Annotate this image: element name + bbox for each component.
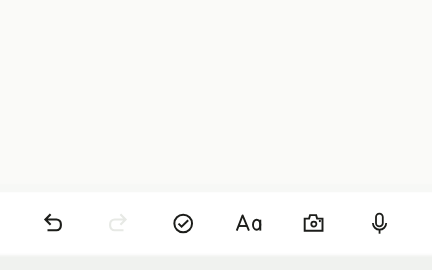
button[interactable]: Voice input	[355, 199, 403, 247]
button[interactable]: Redo	[94, 199, 142, 247]
button[interactable]: Checklist	[159, 199, 207, 247]
button[interactable]: Text formatting	[225, 199, 273, 247]
button[interactable]: Undo	[29, 199, 77, 247]
button[interactable]: Camera	[290, 199, 338, 247]
